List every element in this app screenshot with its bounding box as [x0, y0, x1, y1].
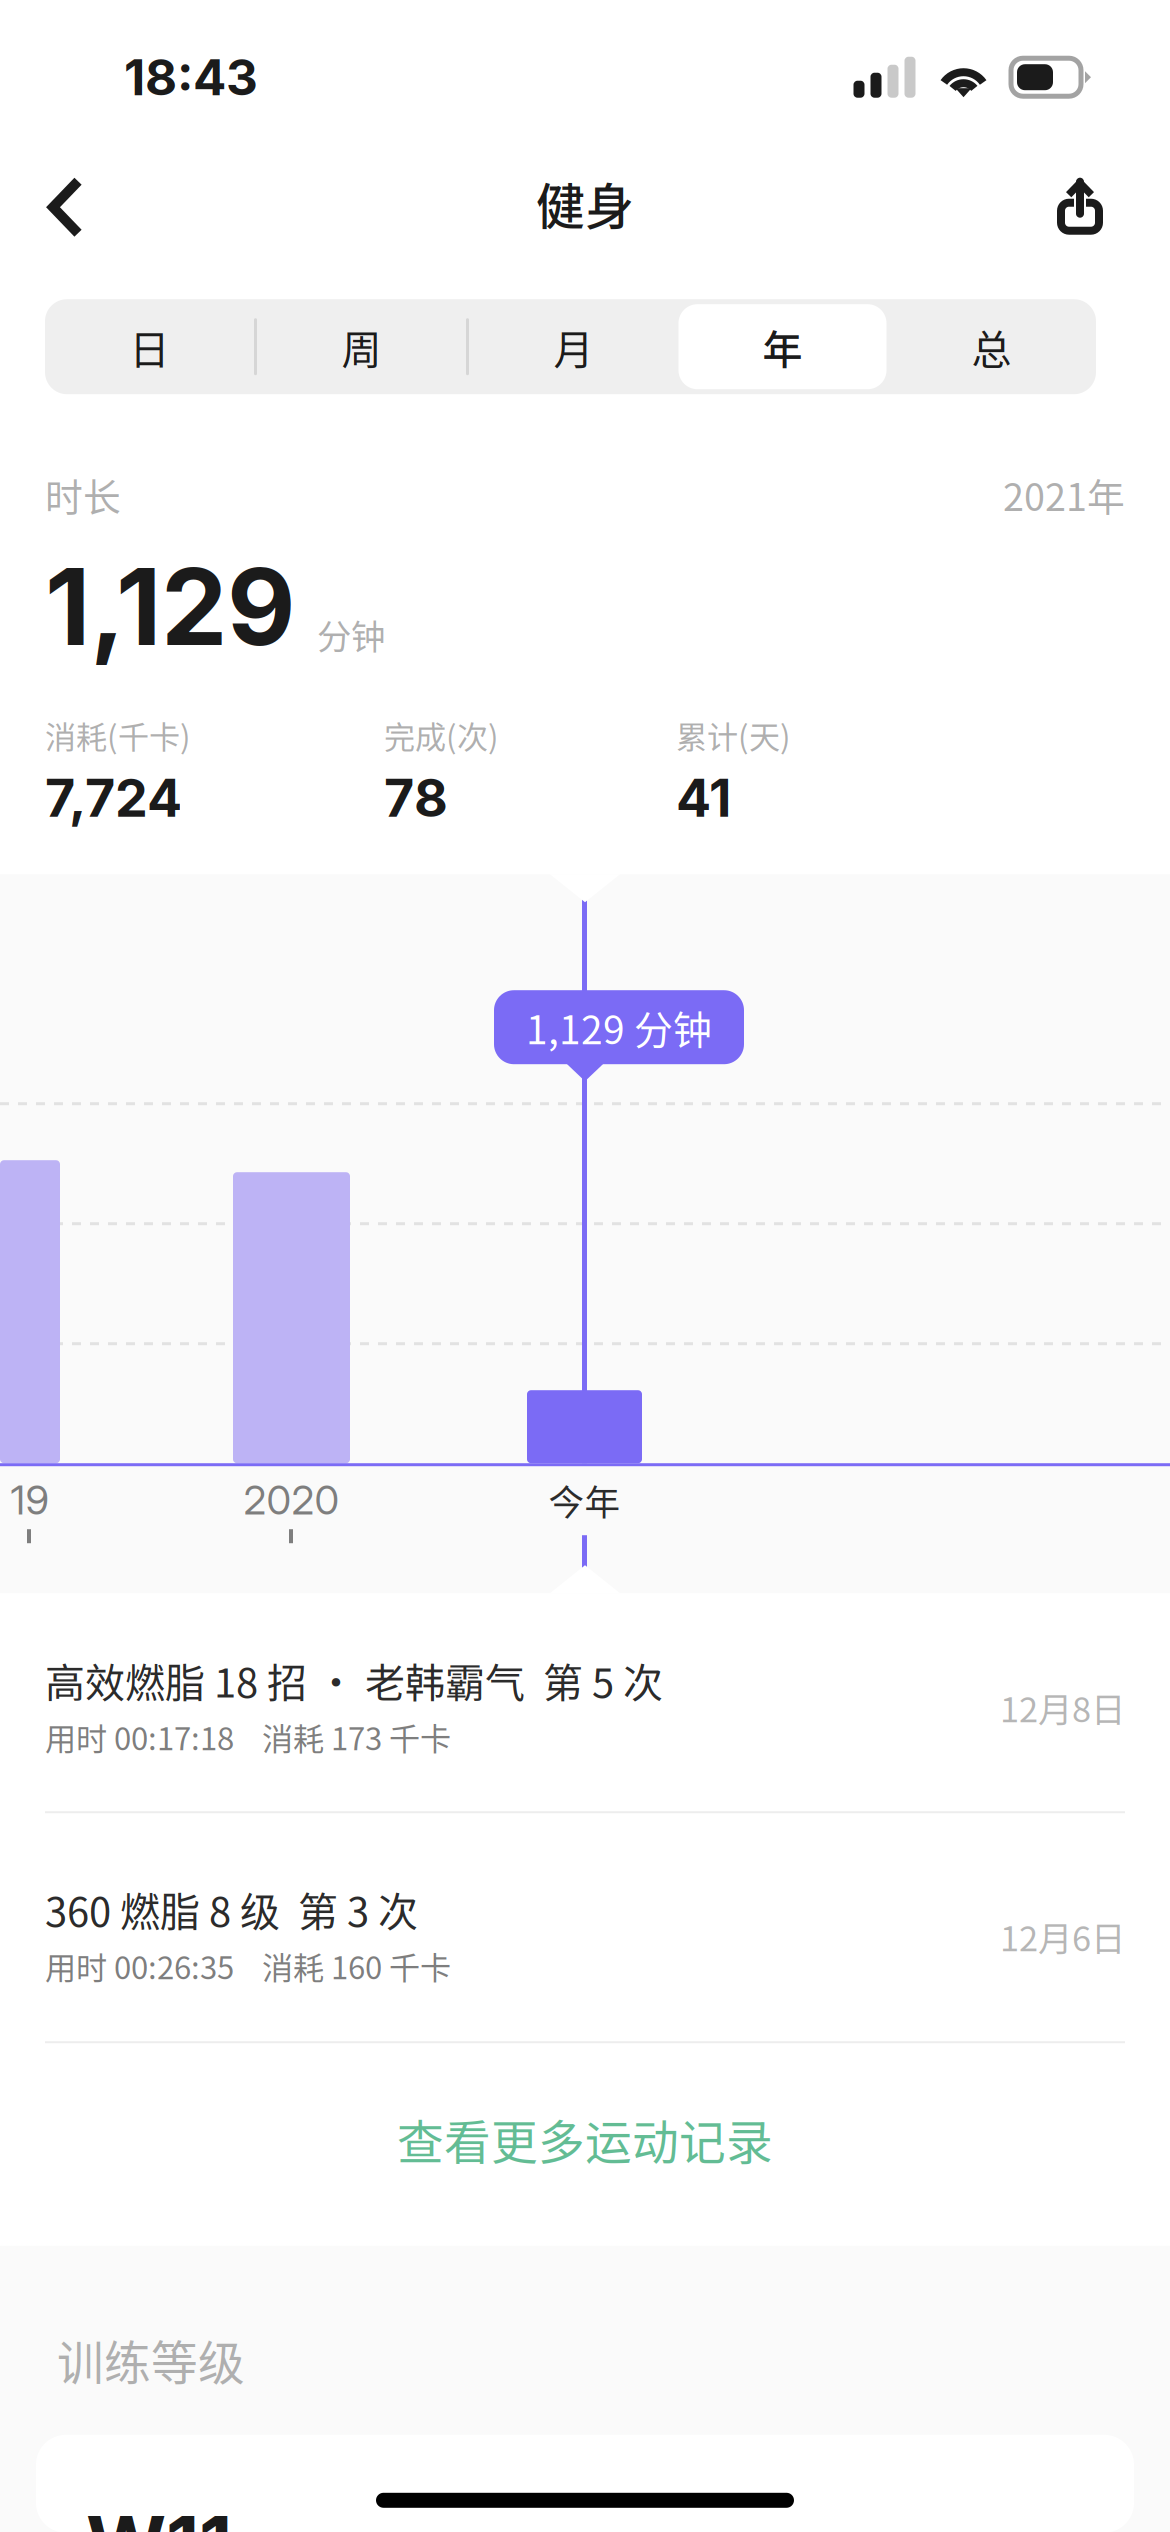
staticText: 用时 00:26:35 消耗 160 千卡: [45, 1943, 451, 1988]
staticText: 完成(次): [384, 712, 499, 757]
staticText: 日: [129, 318, 169, 376]
staticText: 12月6日: [1000, 1911, 1125, 1961]
staticText: 月: [553, 318, 593, 376]
staticText: 分钟: [317, 609, 385, 659]
staticText: 今年: [548, 1474, 620, 1526]
staticText: 健身: [536, 168, 634, 239]
button[interactable]: 总: [887, 299, 1096, 394]
button[interactable]: 年: [678, 299, 887, 394]
button[interactable]: 返回: [0, 158, 122, 270]
staticText: 7,724: [45, 766, 182, 829]
staticText: 78: [384, 766, 448, 829]
staticText: 查看更多运动记录: [397, 2105, 773, 2173]
button[interactable]: 日: [45, 299, 254, 394]
staticText: 2021年: [1003, 467, 1125, 522]
staticText: 1,129 分钟: [526, 999, 712, 1055]
staticText: 训练等级: [57, 2326, 245, 2393]
button[interactable]: 月: [469, 299, 678, 394]
button[interactable]: 360 燃脂 8 级 第 3 次: [0, 1813, 1170, 2041]
staticText: 用时 00:17:18 消耗 173 千卡: [45, 1714, 451, 1759]
button[interactable]: 分享: [1016, 164, 1170, 265]
button[interactable]: 查看更多运动记录: [0, 2043, 1170, 2246]
staticText: 周: [341, 318, 381, 376]
staticText: 时长: [45, 467, 121, 522]
staticText: 总: [971, 318, 1011, 376]
staticText: 消耗(千卡): [45, 712, 191, 757]
staticText: 累计(天): [676, 712, 791, 757]
staticText: 12月8日: [1000, 1682, 1125, 1732]
staticText: 1,129: [45, 543, 295, 670]
button[interactable]: 周: [257, 299, 466, 394]
staticText: 18:43: [124, 47, 258, 107]
staticText: 41: [676, 766, 731, 829]
button[interactable]: 高效燃脂 18 招 · 老韩霸气 第 5 次: [0, 1593, 1170, 1811]
staticText: 高效燃脂 18 招 · 老韩霸气 第 5 次: [45, 1651, 663, 1709]
staticText: 2020: [243, 1476, 339, 1524]
staticText: W11: [86, 2497, 232, 2532]
staticText: 年: [762, 318, 802, 376]
staticText: 360 燃脂 8 级 第 3 次: [45, 1880, 418, 1938]
staticText: 19: [10, 1476, 49, 1524]
